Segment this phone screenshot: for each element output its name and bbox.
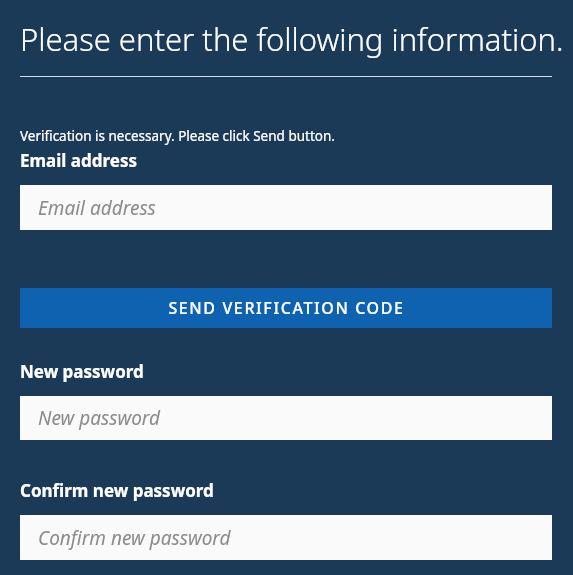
staticText: Confirm new password [20,479,214,502]
staticText: New password [38,405,161,431]
button[interactable]: Confirm new password [20,515,552,560]
staticText: Email address [20,149,137,172]
button[interactable]: New password [20,396,552,440]
button[interactable]: SEND VERIFICATION CODE [20,288,552,328]
button[interactable]: Email address [20,185,552,230]
staticText: SEND VERIFICATION CODE [168,297,405,319]
staticText: New password [20,360,144,383]
staticText: Confirm new password [38,525,231,551]
staticText: Verification is necessary. Please click … [20,127,335,145]
staticText: Please enter the following information. [20,18,564,60]
staticText: Email address [38,195,156,221]
